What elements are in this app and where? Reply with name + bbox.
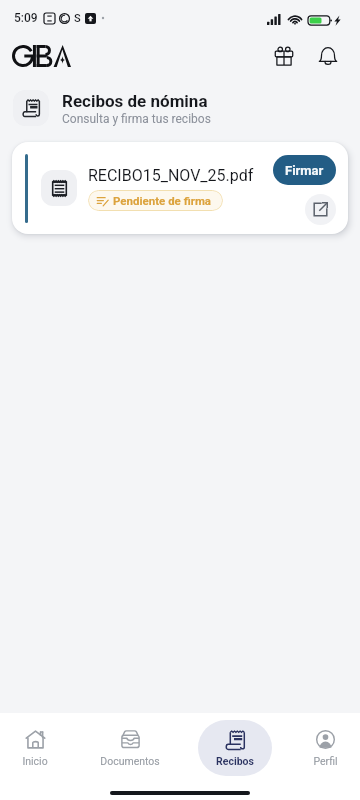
staticText: S — [74, 12, 81, 25]
staticText: Perfil — [313, 755, 338, 767]
button[interactable]: Perfil — [288, 720, 360, 776]
staticText: 5:09 — [14, 11, 38, 25]
staticText: Recibos — [216, 755, 254, 767]
button[interactable]: Inicio — [0, 720, 72, 776]
staticText: Firmar — [285, 163, 324, 178]
staticText: Documentos — [100, 755, 160, 767]
button[interactable]: Recibos — [198, 720, 272, 776]
button[interactable]: RECIBO15_NOV_25.pdf — [12, 142, 348, 234]
button[interactable]: Rewards — [270, 42, 298, 70]
button[interactable]: Documentos — [93, 720, 167, 776]
button[interactable]: Firmar — [273, 155, 336, 185]
staticText: RECIBO15_NOV_25.pdf — [88, 166, 254, 185]
staticText: Inicio — [22, 755, 48, 767]
staticText: Pendiente de firma — [113, 194, 212, 207]
staticText: Consulta y firma tus recibos — [62, 112, 211, 126]
button[interactable]: Notifications — [314, 42, 342, 70]
staticText: Recibos de nómina — [62, 91, 208, 111]
button[interactable]: Open receipt — [305, 194, 336, 225]
